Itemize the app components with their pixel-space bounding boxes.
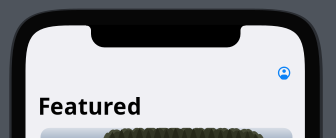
staticText: Featured	[38, 91, 141, 121]
button[interactable]: Account	[278, 67, 290, 79]
